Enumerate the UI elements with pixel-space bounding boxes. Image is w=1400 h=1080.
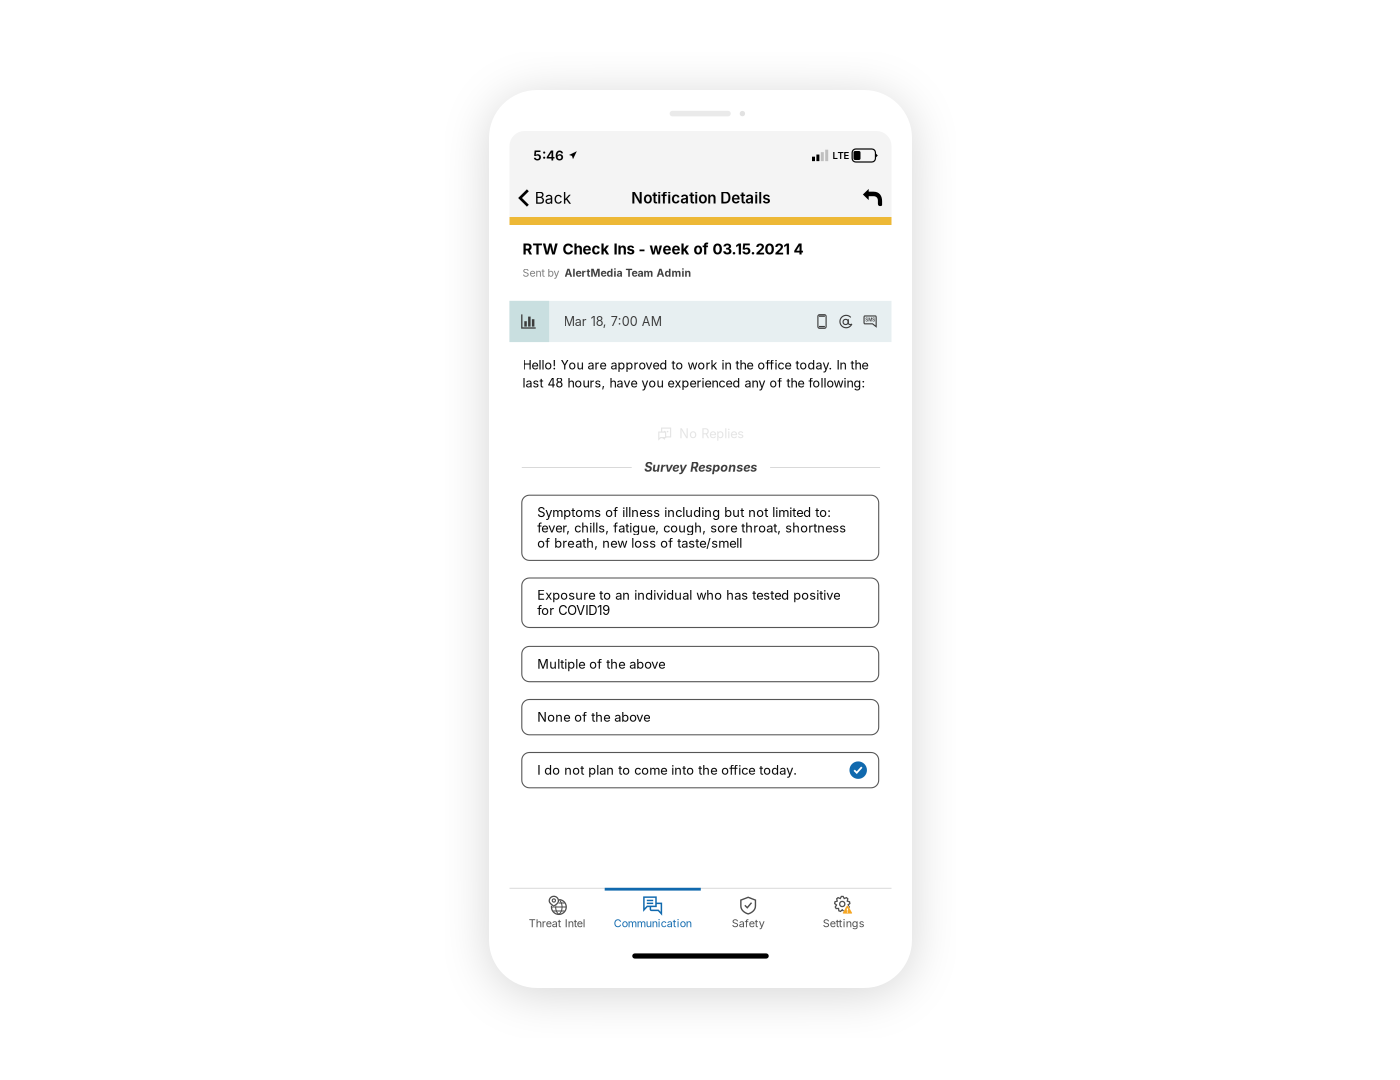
staticText: No Replies — [679, 426, 744, 441]
staticText: LTE — [832, 150, 849, 161]
button[interactable]: Back — [512, 183, 577, 213]
staticText: fever, chills, fatigue, cough, sore thro… — [537, 520, 846, 536]
staticText: Communication — [614, 917, 692, 930]
staticText: Sent by — [522, 267, 559, 279]
staticText: Back — [535, 189, 571, 207]
staticText: Mar 18, 7:00 AM — [564, 314, 662, 329]
staticText: Safety — [732, 917, 765, 930]
staticText: SMS — [865, 317, 875, 323]
button[interactable]: None of the above — [522, 699, 879, 735]
staticText: None of the above — [537, 709, 650, 725]
staticText: RTW Check Ins - week of 03.15.2021 4 — [522, 240, 803, 258]
button[interactable]: Settings — [796, 888, 891, 938]
staticText: Threat Intel — [529, 917, 586, 930]
staticText: Settings — [823, 917, 865, 930]
staticText: Notification Details — [631, 189, 770, 207]
staticText: of breath, new loss of taste/smell — [537, 535, 742, 551]
staticText: Exposure to an individual who has tested… — [537, 587, 840, 603]
button[interactable]: Communication — [605, 888, 700, 938]
button[interactable]: Multiple of the above — [522, 646, 879, 682]
button[interactable]: Exposure to an individual who has tested… — [522, 578, 879, 627]
staticText: Hello! You are approved to work in the o… — [522, 357, 868, 373]
staticText: AlertMedia Team Admin — [564, 267, 691, 279]
button[interactable]: Reply — [855, 181, 889, 213]
staticText: Survey Responses — [644, 459, 757, 475]
staticText: Symptoms of illness including but not li… — [537, 505, 831, 520]
button[interactable]: I do not plan to come into the office to… — [522, 752, 879, 788]
staticText: last 48 hours, have you experienced any … — [522, 375, 865, 391]
button[interactable]: Symptoms of illness including but not li… — [522, 495, 879, 560]
staticText: for COVID19 — [537, 603, 610, 618]
staticText: I do not plan to come into the office to… — [537, 762, 797, 778]
staticText: Multiple of the above — [537, 656, 665, 672]
button[interactable]: Threat Intel — [509, 888, 605, 938]
staticText: 5:46 — [533, 147, 564, 164]
button[interactable]: Safety — [700, 888, 796, 938]
